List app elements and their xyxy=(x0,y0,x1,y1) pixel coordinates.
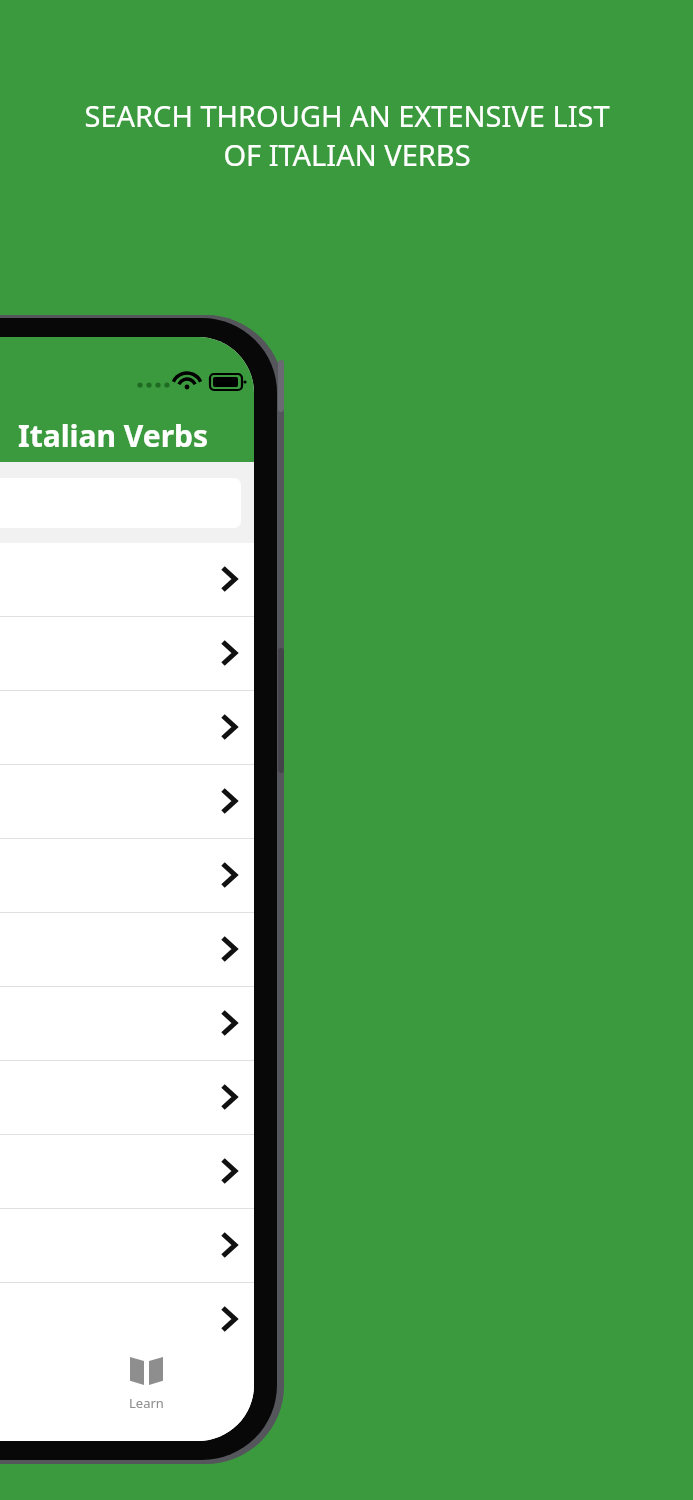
staticText: SEARCH THROUGH AN EXTENSIVE LIST OF ITAL… xyxy=(84,96,610,174)
button[interactable]: abbronzare xyxy=(0,1061,254,1135)
button[interactable]: abbracciarsi xyxy=(0,987,254,1061)
button[interactable]: abbracciare xyxy=(0,913,254,987)
staticText: Italian Verbs xyxy=(18,415,209,456)
button[interactable]: abbandonare xyxy=(0,543,254,617)
button[interactable]: abbattere xyxy=(0,691,254,765)
button[interactable]: abbinare xyxy=(0,839,254,913)
button[interactable]: abitare xyxy=(0,1209,254,1283)
button[interactable]: abbreviare xyxy=(0,1135,254,1209)
button[interactable]: Learn xyxy=(86,1355,206,1412)
button[interactable]: abituarsi xyxy=(0,1283,254,1357)
button[interactable]: abbandonarsi xyxy=(0,765,254,839)
staticText: Learn xyxy=(129,1394,164,1412)
button[interactable]: abbassare xyxy=(0,617,254,691)
